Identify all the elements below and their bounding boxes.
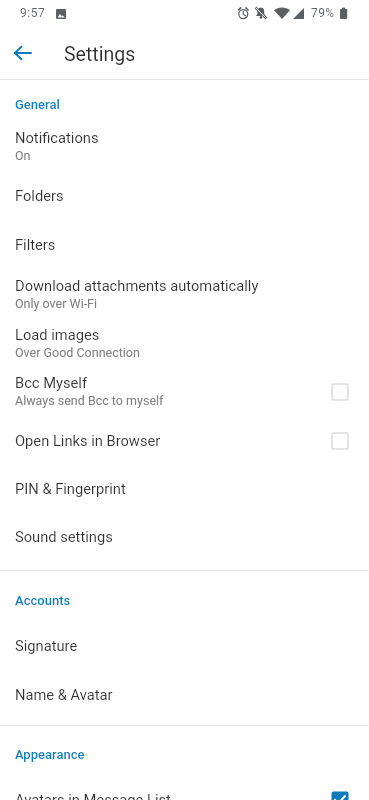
staticText: Avatars in Message List (15, 791, 171, 800)
staticText: Name & Avatar (15, 686, 113, 703)
button[interactable]: Notifications (0, 80, 369, 187)
staticText: Filters (15, 236, 56, 253)
button[interactable]: Sound settings (0, 528, 369, 570)
staticText: Only over Wi-Fi (15, 296, 98, 311)
button[interactable]: Back (1, 31, 45, 75)
staticText: PIN & Fingerprint (15, 480, 126, 497)
button[interactable]: Download attachments automatically (0, 277, 369, 326)
staticText: Signature (15, 637, 78, 654)
staticText: Accounts (15, 593, 71, 608)
staticText: Over Good Connection (15, 345, 140, 360)
staticText: Notifications (15, 129, 99, 146)
staticText: Folders (15, 187, 64, 204)
staticText: Open Links in Browser (15, 432, 161, 449)
staticText: Appearance (15, 747, 85, 762)
button[interactable]: Bcc Myself (0, 374, 369, 432)
staticText: General (15, 97, 60, 112)
button[interactable]: PIN & Fingerprint (0, 480, 369, 528)
staticText: Always send Bcc to myself (15, 393, 164, 408)
button[interactable]: Name & Avatar (0, 686, 369, 725)
button[interactable]: Avatars in Message List (0, 785, 369, 800)
staticText: Load images (15, 326, 100, 343)
staticText: Settings (64, 43, 136, 66)
button[interactable]: Signature (0, 637, 369, 686)
staticText: Download attachments automatically (15, 277, 259, 294)
staticText: 9:57 (20, 6, 46, 20)
staticText: 79% (311, 6, 335, 20)
button[interactable]: Filters (0, 236, 369, 277)
button[interactable]: Load images (0, 326, 369, 374)
staticText: On (15, 148, 31, 163)
button[interactable]: Open Links in Browser (0, 432, 369, 480)
staticText: Bcc Myself (15, 374, 87, 391)
button[interactable]: Folders (0, 187, 369, 236)
staticText: Sound settings (15, 528, 113, 545)
